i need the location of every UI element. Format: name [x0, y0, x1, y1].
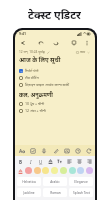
button[interactable]: Text size [56, 158, 63, 165]
button[interactable]: Refresh [84, 146, 93, 155]
staticText: रिपोर्ट भेजें [25, 68, 39, 73]
button[interactable]: Roman [43, 188, 67, 197]
button[interactable]: Color swatch [69, 167, 76, 174]
button[interactable]: Reminder [73, 146, 82, 155]
staticText: टेक्स्ट एडिटर [28, 7, 81, 22]
button[interactable]: Checklist [28, 146, 37, 155]
staticText: Jackline [23, 191, 35, 195]
button[interactable]: Color swatch [77, 167, 84, 174]
button[interactable]: Color swatch [60, 167, 67, 174]
button[interactable]: Align center [76, 158, 83, 165]
button[interactable]: 12 अंडा + चीनी [19, 107, 91, 114]
staticText: B [19, 159, 22, 165]
button[interactable]: Jackline [17, 188, 41, 197]
staticText: I [30, 159, 32, 165]
button[interactable]: रिपोर्ट भेजें [19, 67, 91, 74]
button[interactable]: Align right [86, 158, 93, 165]
button[interactable]: Helvetica [17, 177, 41, 186]
staticText: टीम मीटिंग [25, 75, 39, 80]
button[interactable]: Text color A [17, 168, 23, 174]
button[interactable]: 10 दूध + चीनी [19, 100, 91, 107]
button[interactable]: Insert image [62, 146, 71, 155]
button[interactable]: काम [75, 50, 91, 54]
button[interactable]: Align left [66, 158, 73, 165]
button[interactable]: Arabic [43, 177, 67, 186]
button[interactable]: Undo [36, 38, 46, 48]
button[interactable]: Color swatch [34, 167, 41, 174]
button[interactable]: Text color [47, 158, 54, 165]
staticText: आज के लिए सूची [19, 56, 61, 64]
staticText: कल, अनुक्रमणी [19, 91, 53, 98]
staticText: Helvetica [22, 180, 36, 184]
button[interactable]: Voice note [39, 146, 48, 155]
button[interactable]: Color swatch [25, 167, 32, 174]
staticText: काम [80, 50, 86, 54]
button[interactable]: Back [18, 38, 28, 48]
staticText: 10 दूध + चीनी [25, 101, 45, 106]
button[interactable]: Color swatch [51, 167, 58, 174]
staticText: Splash Text [73, 191, 90, 195]
button[interactable]: Underline [37, 158, 44, 165]
button[interactable]: Redo [51, 38, 61, 48]
staticText: Elegance [74, 180, 88, 184]
button[interactable]: Color swatch [42, 167, 49, 174]
staticText: 9:41 [19, 31, 26, 36]
button[interactable]: Attach [51, 146, 60, 155]
staticText: U [39, 159, 43, 165]
staticText: 12 जन, 10:24 पूर्वाह्न [19, 50, 45, 54]
button[interactable]: टीम मीटिंग [19, 74, 91, 81]
staticText: Roman [50, 191, 61, 195]
button[interactable]: Bold [17, 158, 24, 165]
button[interactable]: Elegance [69, 177, 93, 186]
staticText: 12 अंडा + चीनी [25, 108, 46, 113]
button[interactable]: Splash Text [69, 188, 93, 197]
button[interactable]: Text format [17, 146, 26, 155]
button[interactable]: Pin [69, 38, 79, 48]
staticText: Arabic [50, 180, 60, 184]
button[interactable]: More options [82, 38, 92, 48]
button[interactable]: Italic [27, 158, 34, 165]
button[interactable]: Color swatch [86, 167, 93, 174]
staticText: डिज़ाइन फ़ाइल अपडेट करना बाकी [25, 82, 70, 87]
button[interactable]: डिज़ाइन फ़ाइल अपडेट करना बाकी [19, 81, 91, 88]
